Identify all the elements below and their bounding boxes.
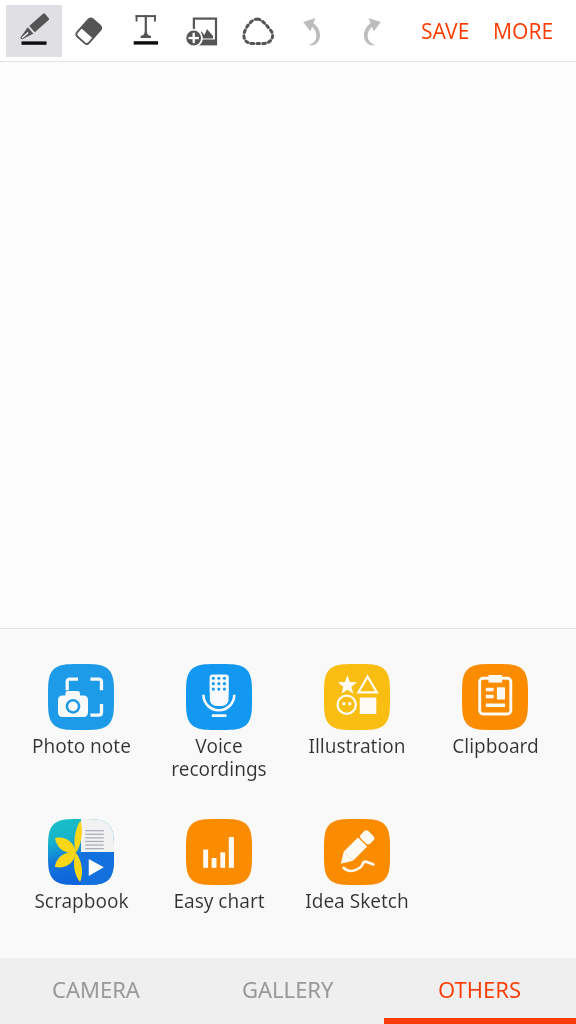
staticText: GALLERY [242,974,334,1004]
staticText: OTHERS [438,974,522,1004]
staticText: Scrapbook [34,888,129,914]
button[interactable]: Insert image [174,0,230,62]
staticText: Easy chart [173,888,265,914]
button[interactable]: MORE [483,0,564,62]
button[interactable]: Selection [230,0,286,62]
button[interactable]: SAVE [411,0,480,62]
button[interactable]: Redo [342,0,398,62]
button[interactable]: Illustration [288,636,426,759]
button[interactable]: Scrapbook [12,791,150,914]
button[interactable]: CAMERA [0,958,192,1024]
button[interactable]: Clipboard [426,636,564,759]
button[interactable]: GALLERY [192,958,384,1024]
staticText: Voice recordings [171,733,267,782]
staticText: MORE [493,17,554,46]
button[interactable]: Photo note [12,636,150,759]
staticText: Clipboard [452,733,539,759]
staticText: SAVE [421,17,470,46]
button[interactable]: Pen [6,0,62,62]
staticText: Illustration [308,733,406,759]
button[interactable]: Idea Sketch [288,791,426,914]
button[interactable]: Voice recordings [150,636,288,782]
staticText: Idea Sketch [305,888,409,914]
button[interactable]: OTHERS [384,958,576,1024]
button[interactable]: Easy chart [150,791,288,914]
staticText: CAMERA [52,974,140,1004]
button[interactable]: Text [118,0,174,62]
button[interactable]: Undo [286,0,342,62]
staticText: Photo note [32,733,131,759]
button[interactable]: Eraser [62,0,118,62]
